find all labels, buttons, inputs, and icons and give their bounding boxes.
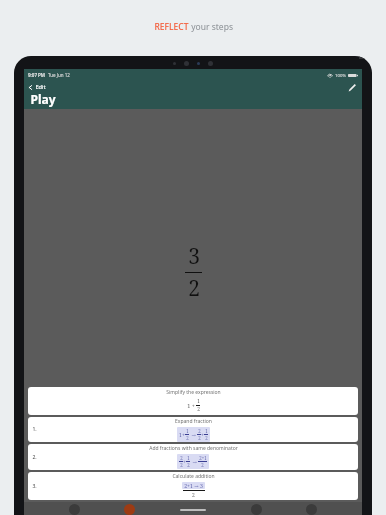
staticText: 2+1 — [199, 455, 207, 461]
staticText: REFLECT — [154, 21, 189, 33]
staticText: → — [189, 431, 197, 438]
staticText: Add fractions with same denominator — [149, 445, 238, 452]
button[interactable]: Edit — [27, 82, 47, 92]
staticText: 2 — [180, 462, 183, 468]
staticText: → — [190, 458, 198, 465]
button[interactable]: 3. — [28, 472, 358, 500]
staticText: 2+1 → 3 — [184, 482, 203, 489]
staticText: 2 — [186, 435, 189, 441]
staticText: 2 — [201, 462, 204, 468]
staticText: 2 — [205, 435, 208, 441]
staticText: 1. — [32, 426, 37, 433]
staticText: 2 — [197, 406, 200, 413]
button[interactable]: Edit — [347, 82, 358, 93]
button[interactable]: 2. — [28, 444, 358, 470]
staticText: 2 — [180, 455, 183, 461]
staticText: your steps — [189, 21, 233, 33]
staticText: + — [201, 431, 204, 438]
staticText: 1 + — [187, 402, 195, 409]
button[interactable]: App two — [124, 504, 135, 515]
button[interactable]: App one — [69, 504, 80, 515]
staticText: Simplify the expression — [166, 389, 221, 396]
button[interactable]: Simplify the expression — [28, 387, 358, 415]
staticText: 2 — [187, 462, 190, 468]
staticText: Tue Jun 12 — [48, 72, 70, 78]
staticText: 1 — [187, 455, 190, 461]
staticText: 1 — [186, 428, 189, 434]
staticText: 3 — [188, 242, 200, 271]
staticText: 9:07 PM — [28, 72, 45, 78]
staticText: 2 — [192, 492, 195, 499]
staticText: 100% — [335, 72, 346, 78]
staticText: 1+ — [179, 431, 185, 438]
staticText: Play — [30, 91, 56, 107]
staticText: Calculate addition — [172, 473, 215, 480]
staticText: + — [183, 458, 186, 465]
staticText: 1 — [205, 428, 208, 434]
staticText: 2 — [198, 428, 201, 434]
staticText: 3. — [32, 483, 37, 490]
staticText: Edit — [35, 83, 46, 91]
button[interactable]: App four — [306, 504, 317, 515]
staticText: 2. — [32, 454, 37, 461]
staticText: 2 — [188, 274, 200, 303]
staticText: Expand fraction — [175, 418, 212, 425]
staticText: 1 — [197, 398, 200, 405]
button[interactable]: App three — [251, 504, 262, 515]
button[interactable]: 1. — [28, 417, 358, 442]
staticText: 2 — [198, 435, 201, 441]
